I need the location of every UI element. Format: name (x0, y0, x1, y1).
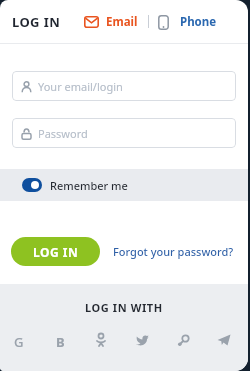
button[interactable]: B (53, 333, 67, 347)
staticText: Your email/login (38, 79, 123, 94)
button[interactable]: Password (12, 118, 236, 148)
button[interactable]: Phone (158, 8, 217, 36)
staticText: Email (106, 14, 138, 30)
button[interactable]: Email (84, 8, 138, 36)
staticText: LOG IN (33, 244, 79, 260)
staticText: B (56, 333, 65, 347)
button[interactable]: G (12, 333, 26, 347)
button[interactable] (217, 333, 231, 347)
staticText: Password (38, 126, 88, 141)
staticText: LOG IN (12, 13, 61, 31)
staticText: LOG IN WITH (85, 300, 163, 315)
button[interactable]: Forgot your password? (113, 244, 234, 259)
button[interactable] (135, 333, 149, 347)
button[interactable]: Your email/login (12, 71, 236, 101)
staticText: Forgot your password? (113, 244, 234, 259)
staticText: Remember me (50, 178, 128, 193)
button[interactable] (176, 333, 190, 347)
staticText: Phone (180, 14, 217, 30)
button[interactable]: LOG IN (11, 237, 100, 266)
button[interactable] (94, 333, 108, 347)
staticText: G (14, 333, 24, 347)
button[interactable]: Remember me (0, 169, 248, 201)
